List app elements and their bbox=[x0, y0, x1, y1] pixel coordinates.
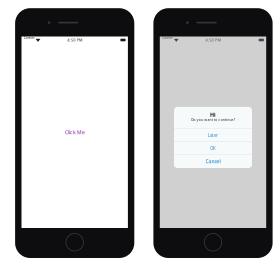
staticText: Carrier bbox=[24, 35, 34, 45]
button[interactable]: Click Me bbox=[21, 127, 128, 138]
staticText: OK bbox=[210, 145, 216, 151]
button[interactable]: Later bbox=[174, 129, 252, 142]
staticText: Click Me bbox=[65, 129, 85, 136]
staticText: Hi bbox=[210, 111, 216, 118]
button[interactable]: Cancel bbox=[174, 155, 252, 168]
staticText: Later bbox=[208, 132, 218, 138]
button[interactable]: OK bbox=[174, 142, 252, 155]
staticText: Cancel bbox=[205, 158, 220, 165]
staticText: Carrier bbox=[162, 35, 172, 45]
staticText: 4:50 PM bbox=[206, 37, 220, 43]
staticText: Do you want to continue? bbox=[191, 117, 235, 122]
staticText: 4:50 PM bbox=[67, 37, 82, 43]
